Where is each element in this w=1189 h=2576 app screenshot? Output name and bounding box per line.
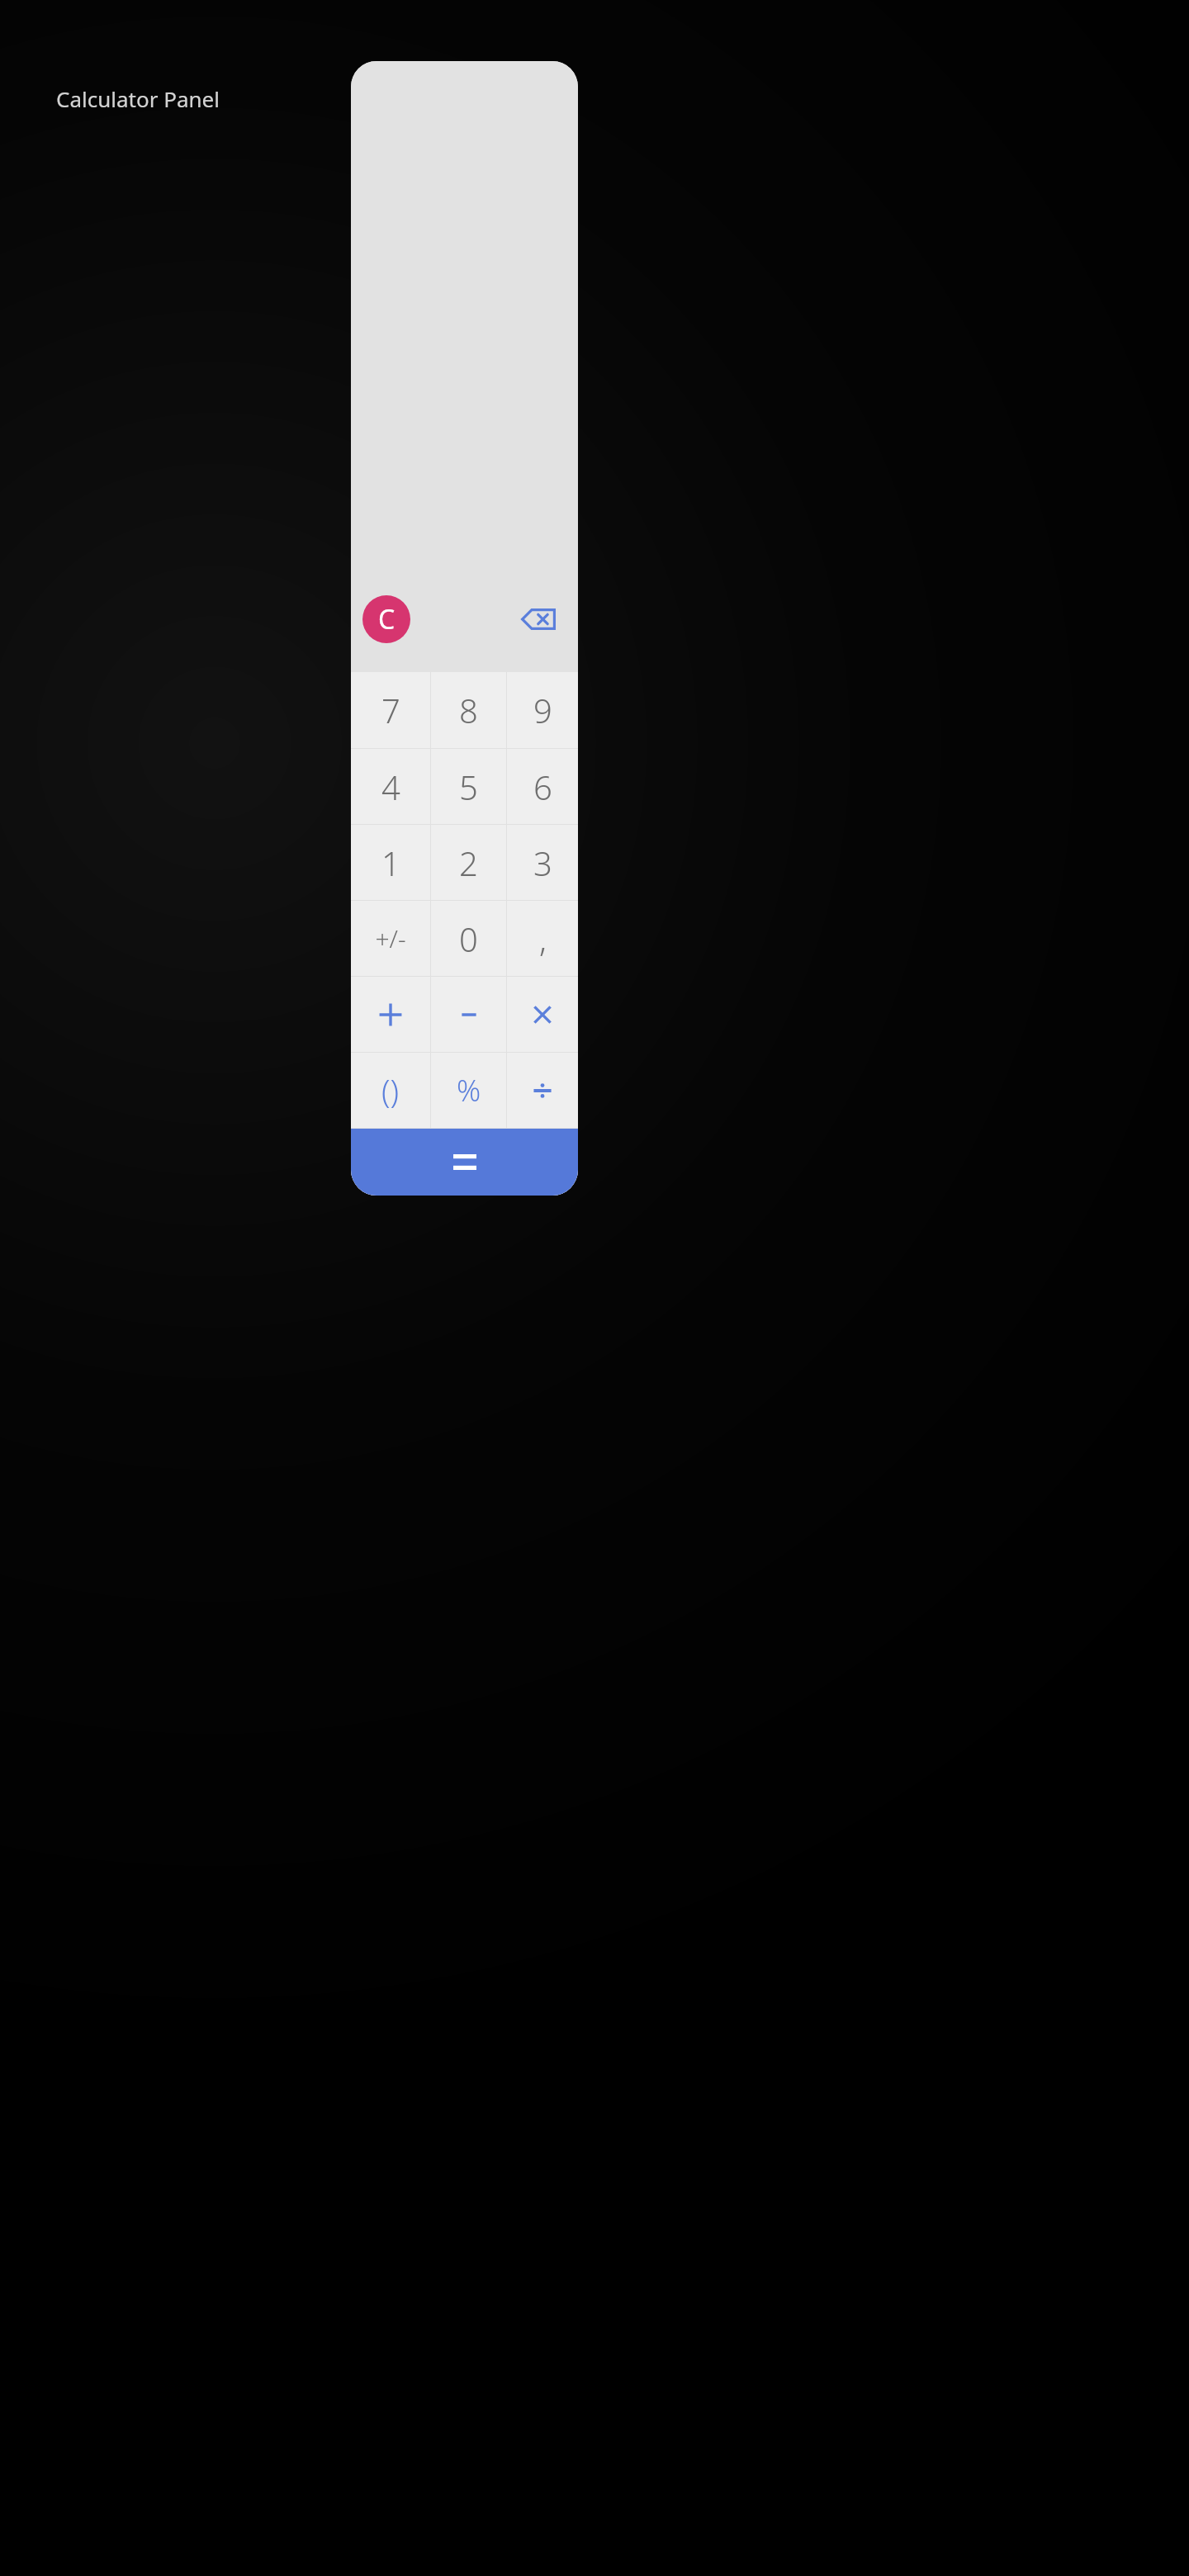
button[interactable]: 5 <box>431 749 506 824</box>
staticText: % <box>457 1070 481 1110</box>
button[interactable]: 9 <box>507 672 578 748</box>
button[interactable]: Plus <box>351 977 430 1052</box>
button[interactable]: 6 <box>507 749 578 824</box>
staticText: 0 <box>459 916 478 961</box>
button[interactable]: +/- <box>351 901 430 976</box>
staticText: 8 <box>459 688 478 732</box>
staticText: 9 <box>533 688 552 732</box>
staticText: 6 <box>533 765 552 809</box>
button[interactable]: 8 <box>431 672 506 748</box>
staticText: 7 <box>381 688 400 732</box>
button[interactable]: 0 <box>431 901 506 976</box>
button[interactable]: 3 <box>507 825 578 900</box>
button[interactable]: Parentheses <box>351 1053 430 1128</box>
staticText: +/- <box>375 921 406 955</box>
button[interactable]: , <box>507 901 578 976</box>
staticText: 5 <box>459 765 478 809</box>
button[interactable]: Divide <box>507 1053 578 1128</box>
staticText: () <box>381 1069 400 1112</box>
button[interactable]: Percent <box>431 1053 506 1128</box>
button[interactable]: Minus <box>431 977 506 1052</box>
button[interactable]: C <box>362 595 410 643</box>
button[interactable]: 1 <box>351 825 430 900</box>
staticText: 3 <box>533 841 552 885</box>
staticText: 4 <box>381 765 400 809</box>
button[interactable]: 7 <box>351 672 430 748</box>
button[interactable]: 2 <box>431 825 506 900</box>
button[interactable]: 4 <box>351 749 430 824</box>
staticText: 1 <box>381 841 400 885</box>
staticText: , <box>539 916 547 961</box>
staticText: 2 <box>459 841 478 885</box>
button[interactable]: Multiply <box>507 977 578 1052</box>
button[interactable]: Equals <box>351 1129 578 1196</box>
button[interactable]: Backspace <box>511 595 566 643</box>
staticText: Calculator Panel <box>56 84 220 113</box>
staticText: C <box>378 601 396 637</box>
